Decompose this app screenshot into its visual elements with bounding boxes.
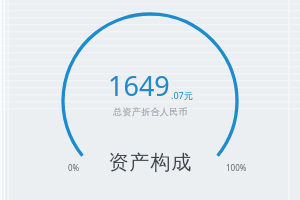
button[interactable]: 1649 <box>0 67 300 117</box>
staticText: 1649 <box>108 67 170 104</box>
staticText: 总资产折合人民币 <box>113 106 188 117</box>
staticText: 100% <box>226 162 247 173</box>
other: Asset composition gauge <box>0 0 300 200</box>
staticText: .07元 <box>171 89 193 101</box>
button[interactable]: 资产构成 <box>108 150 192 175</box>
staticText: 0% <box>68 162 80 173</box>
